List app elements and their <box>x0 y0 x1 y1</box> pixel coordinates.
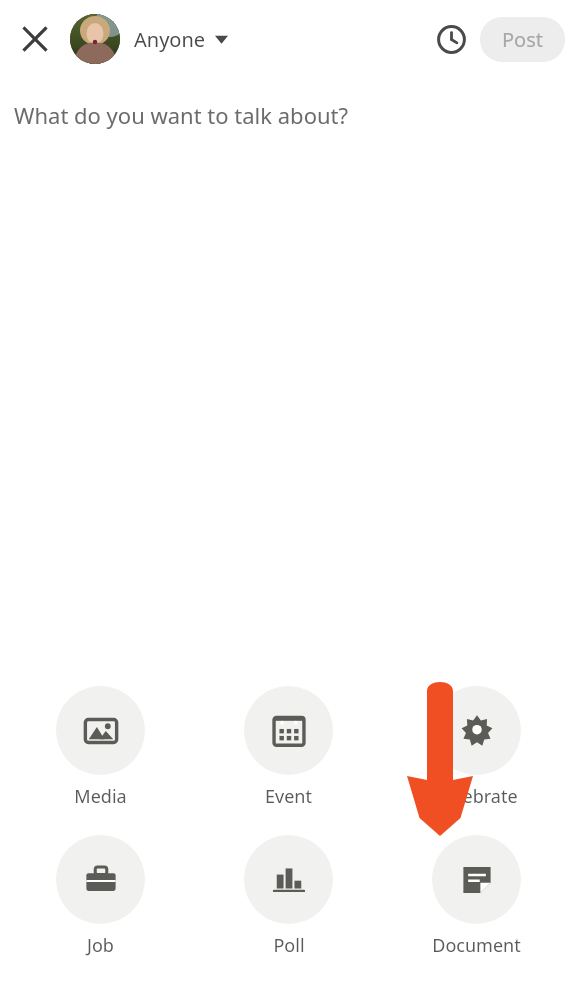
button[interactable]: Close <box>12 16 58 62</box>
staticText: Event <box>265 784 312 809</box>
staticText: Media <box>74 784 127 809</box>
staticText: What do you want to talk about? <box>14 100 349 130</box>
staticText: Poll <box>273 933 305 958</box>
button[interactable]: Event <box>240 684 337 811</box>
button[interactable]: Post <box>480 17 565 62</box>
button[interactable]: Celebrate <box>428 684 525 811</box>
button[interactable]: Schedule post <box>428 16 474 62</box>
staticText: Post <box>502 26 543 53</box>
button[interactable]: Job <box>52 833 149 960</box>
button[interactable]: Document <box>428 833 525 960</box>
button[interactable]: Anyone <box>70 14 234 64</box>
staticText: Anyone <box>134 26 206 53</box>
staticText: Job <box>87 933 114 958</box>
staticText: Celebrate <box>436 784 518 809</box>
staticText: Document <box>432 933 521 958</box>
button[interactable]: Media <box>52 684 149 811</box>
button[interactable]: Poll <box>240 833 337 960</box>
